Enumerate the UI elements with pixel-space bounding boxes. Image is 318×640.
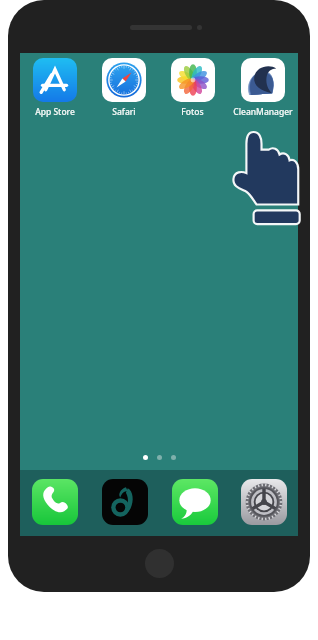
button[interactable]: Home xyxy=(145,549,174,578)
staticText: Safari xyxy=(112,106,136,118)
button[interactable]: CleanManager xyxy=(227,58,298,118)
button[interactable]: Phone xyxy=(20,479,90,531)
button[interactable]: App Store xyxy=(20,58,89,118)
button[interactable]: Messages xyxy=(160,479,230,531)
button[interactable]: Tap CleanManager xyxy=(232,130,304,228)
button[interactable]: Settings xyxy=(230,479,298,531)
button[interactable]: Fotos xyxy=(158,58,227,118)
button[interactable]: Safari xyxy=(89,58,158,118)
button[interactable]: Music xyxy=(90,479,160,531)
staticText: Fotos xyxy=(181,106,204,118)
staticText: CleanManager xyxy=(233,106,293,118)
staticText: App Store xyxy=(35,106,75,118)
